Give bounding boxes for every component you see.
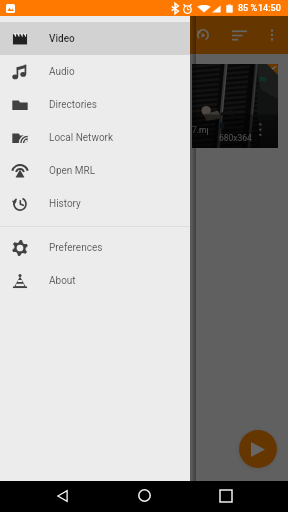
- staticText: History: [49, 198, 81, 210]
- button[interactable]: Sort: [224, 20, 254, 50]
- button[interactable]: Preferences: [0, 231, 190, 264]
- button[interactable]: More options: [257, 20, 287, 50]
- button[interactable]: Audio: [0, 55, 190, 88]
- staticText: Local Network: [49, 132, 114, 144]
- button[interactable]: Recent apps: [209, 480, 243, 511]
- button[interactable]: Directories: [0, 88, 190, 121]
- staticText: 85 %: [238, 3, 258, 14]
- button[interactable]: Back: [45, 480, 79, 511]
- button[interactable]: Open MRL: [0, 154, 190, 187]
- staticText: 14:50: [258, 3, 281, 14]
- button[interactable]: Local Network: [0, 121, 190, 154]
- staticText: v20130628_142237.mp4: [10, 125, 26, 135]
- button[interactable]: Play: [239, 430, 277, 468]
- staticText: Audio: [49, 66, 75, 78]
- button[interactable]: 680x364: [10, 64, 96, 148]
- staticText: 680x364: [37, 133, 70, 143]
- button[interactable]: About: [0, 264, 190, 297]
- button[interactable]: 680x364: [101, 64, 187, 148]
- button[interactable]: Home: [127, 480, 161, 511]
- button[interactable]: Video: [0, 22, 190, 55]
- staticText: About: [49, 275, 76, 287]
- staticText: Preferences: [49, 242, 103, 254]
- staticText: Open MRL: [49, 165, 96, 177]
- staticText: v20130628_142237.mp4: [101, 125, 117, 135]
- button[interactable]: History: [0, 187, 190, 220]
- staticText: 680x364: [219, 133, 252, 143]
- button[interactable]: Refresh: [188, 20, 218, 50]
- button[interactable]: 680x364: [192, 64, 278, 148]
- staticText: Directories: [49, 99, 97, 111]
- staticText: v20130628_142237.mp4: [192, 125, 208, 135]
- staticText: Video: [49, 33, 75, 45]
